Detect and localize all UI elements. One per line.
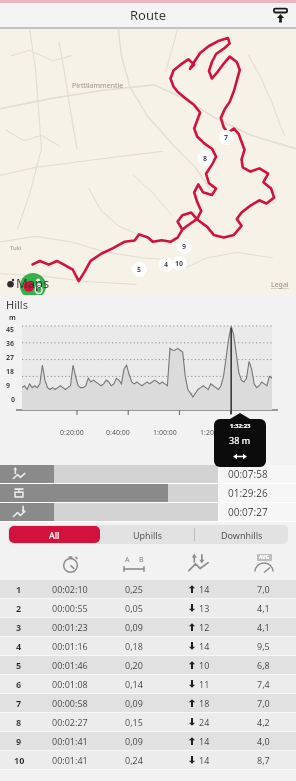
staticText: 14 xyxy=(199,735,210,747)
staticText: 0,14 xyxy=(125,678,143,690)
button[interactable]: 2 xyxy=(0,599,296,617)
staticText: m xyxy=(9,313,16,323)
button[interactable]: Pirttilammentie xyxy=(0,29,296,295)
staticText: 3 xyxy=(16,621,22,633)
button[interactable]: 00:07:27 xyxy=(0,503,296,521)
button[interactable]: 5 xyxy=(0,656,296,674)
button[interactable]: Downhills xyxy=(196,526,287,543)
staticText: 00:02:10 xyxy=(52,583,88,595)
staticText: 0 xyxy=(11,395,16,405)
staticText: 00:07:58 xyxy=(228,467,268,481)
staticText: 00:01:08 xyxy=(52,678,88,690)
button[interactable]: 00:07:58 xyxy=(0,465,296,483)
button[interactable]: 8 xyxy=(198,151,213,166)
button[interactable]: Distance xyxy=(102,547,166,580)
staticText: 0,09 xyxy=(125,697,143,709)
staticText: 1:32:23 xyxy=(230,422,251,430)
button[interactable]: 10 xyxy=(0,751,296,769)
button[interactable]: Duration xyxy=(38,547,102,580)
staticText: 0,05 xyxy=(125,602,143,614)
staticText: 2 xyxy=(16,602,22,614)
staticText: Tuki xyxy=(10,244,22,252)
staticText: 4 xyxy=(164,260,169,270)
button[interactable]: Legal xyxy=(271,280,289,290)
staticText: 7,0 xyxy=(257,697,270,709)
staticText: B xyxy=(139,555,144,565)
button[interactable]: 5 xyxy=(132,262,147,277)
staticText: 0,18 xyxy=(125,640,143,652)
button[interactable]: 4 xyxy=(159,257,174,272)
staticText: 6,8 xyxy=(257,659,270,671)
staticText: 0:20:00 xyxy=(60,428,84,438)
staticText: 00:00:58 xyxy=(52,697,88,709)
staticText: 8 xyxy=(16,716,22,728)
staticText: 38 m xyxy=(229,434,251,446)
staticText: 9 xyxy=(16,735,22,747)
staticText: 9 xyxy=(182,242,187,252)
staticText: 4 xyxy=(16,640,22,652)
button[interactable]: Ascent xyxy=(166,547,231,580)
staticText: 18 xyxy=(199,697,210,709)
staticText: 0:40:00 xyxy=(106,428,130,438)
button[interactable]: Average speed xyxy=(231,547,296,580)
staticText: 0,25 xyxy=(125,583,143,595)
button[interactable]: 3 xyxy=(0,618,296,636)
button[interactable]: 9 xyxy=(0,732,296,750)
staticText: 6 xyxy=(16,678,22,690)
staticText: 9,5 xyxy=(257,640,270,652)
button[interactable]: 7 xyxy=(0,694,296,712)
button[interactable]: 8 xyxy=(0,713,296,731)
button[interactable]: Export route xyxy=(269,4,291,26)
button[interactable]: 9 xyxy=(177,239,192,254)
staticText: 10 xyxy=(14,754,25,766)
staticText: 24 xyxy=(199,716,210,728)
staticText: 27 xyxy=(6,353,15,363)
staticText: 7 xyxy=(224,133,229,143)
staticText: Maps xyxy=(16,274,50,292)
staticText: 10 xyxy=(175,259,184,269)
button[interactable]: 4 xyxy=(0,637,296,655)
staticText: 12 xyxy=(199,621,210,633)
staticText: 45 xyxy=(6,325,15,335)
staticText: 5 xyxy=(16,659,22,671)
staticText: 10 xyxy=(199,659,210,671)
staticText: Uphills xyxy=(133,529,162,541)
button[interactable]: 1 xyxy=(0,580,296,598)
staticText: 1 xyxy=(16,583,22,595)
staticText: 1:00:00 xyxy=(153,428,177,438)
staticText: 00:01:46 xyxy=(52,659,88,671)
staticText: 00:07:27 xyxy=(228,505,268,519)
button[interactable]: 10 xyxy=(172,256,187,271)
staticText: 14 xyxy=(199,640,210,652)
staticText: 1:20:00 xyxy=(200,428,224,438)
staticText: 0,24 xyxy=(125,754,143,766)
staticText: All xyxy=(49,529,60,541)
button[interactable]: 01:29:26 xyxy=(0,484,296,502)
button[interactable]: All xyxy=(9,526,100,543)
staticText: Hills xyxy=(6,297,28,312)
staticText: 14 xyxy=(199,754,210,766)
staticText: 8,7 xyxy=(257,754,270,766)
staticText: Route xyxy=(130,6,167,24)
button[interactable]: 6 xyxy=(0,675,296,693)
staticText: 7,0 xyxy=(257,583,270,595)
staticText: 36 xyxy=(6,339,15,349)
staticText: 7 xyxy=(16,697,22,709)
staticText: A xyxy=(125,555,130,565)
staticText: 13 xyxy=(199,602,210,614)
staticText: 14 xyxy=(199,583,210,595)
staticText: 0,15 xyxy=(125,716,143,728)
staticText: 5 xyxy=(137,265,142,275)
staticText: AVG xyxy=(259,554,270,561)
staticText: 00:01:16 xyxy=(52,640,88,652)
staticText: 01:29:26 xyxy=(228,486,268,500)
staticText: 00:02:27 xyxy=(52,716,88,728)
staticText: 00:01:41 xyxy=(52,754,88,766)
staticText: 4,2 xyxy=(257,716,270,728)
staticText: Downhills xyxy=(221,529,263,541)
staticText: 4,0 xyxy=(257,735,270,747)
button[interactable]: Start point xyxy=(20,273,46,299)
staticText: 00:01:41 xyxy=(52,735,88,747)
button[interactable]: Uphills xyxy=(102,526,193,543)
button[interactable]: 7 xyxy=(219,130,234,145)
